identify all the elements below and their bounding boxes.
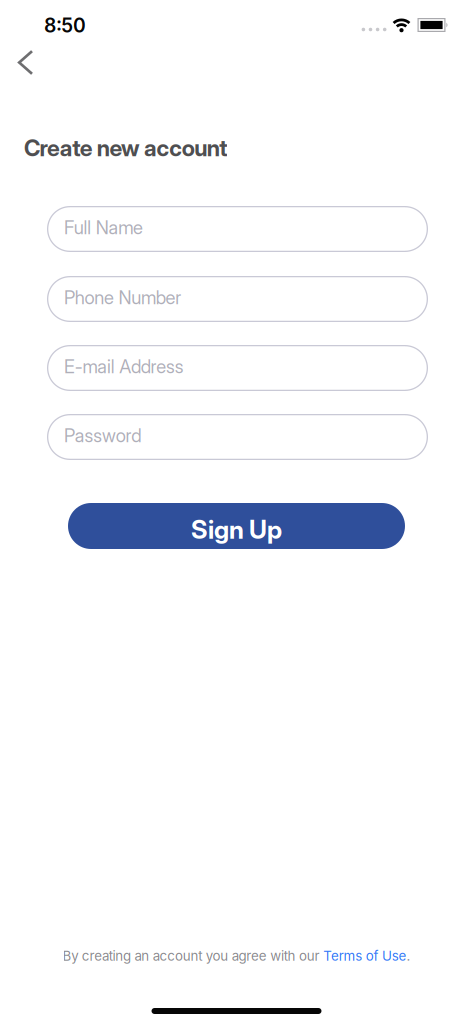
staticText: . xyxy=(406,948,410,964)
staticText: E-mail Address xyxy=(64,355,184,378)
button[interactable]: Password xyxy=(45,414,428,460)
staticText: Password xyxy=(64,424,141,447)
button[interactable]: Phone Number xyxy=(45,276,428,322)
button[interactable]: Sign Up xyxy=(68,503,405,549)
staticText: Terms of Use xyxy=(323,948,406,964)
staticText: Full Name xyxy=(64,216,143,239)
staticText: By creating an account you agree with ou… xyxy=(62,948,323,964)
staticText: Sign Up xyxy=(191,514,282,545)
button[interactable]: E-mail Address xyxy=(45,345,428,391)
button[interactable]: Terms of Use xyxy=(323,948,406,964)
button[interactable]: Full Name xyxy=(45,206,428,252)
button[interactable]: Back xyxy=(0,50,45,75)
staticText: Phone Number xyxy=(64,286,181,309)
staticText: 8:50 xyxy=(44,14,86,37)
staticText: Create new account xyxy=(24,134,227,162)
